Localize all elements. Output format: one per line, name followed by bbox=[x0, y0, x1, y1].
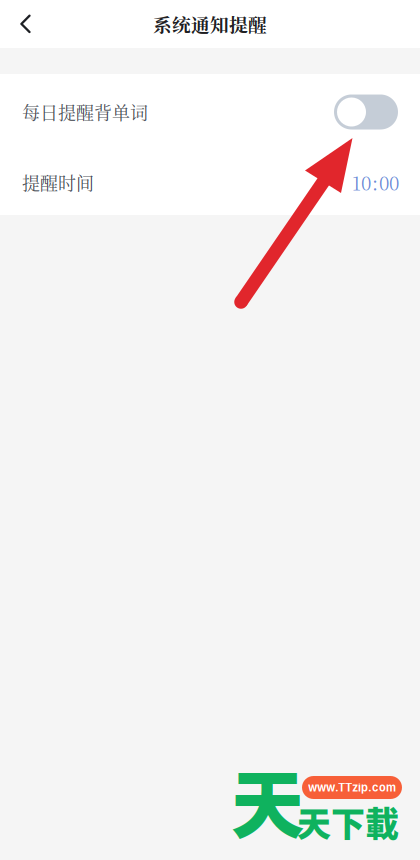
staticText: 系统通知提醒 bbox=[153, 11, 267, 37]
staticText: 提醒时间 bbox=[22, 170, 94, 195]
staticText: 每日提醒背单词 bbox=[22, 99, 148, 125]
button[interactable]: 每日提醒背单词 bbox=[0, 74, 420, 144]
button[interactable]: 提醒时间 bbox=[0, 144, 420, 215]
button[interactable]: Back bbox=[0, 0, 48, 48]
staticText: 天 bbox=[231, 747, 304, 853]
staticText: 天下載 bbox=[297, 797, 399, 846]
staticText: www.TTzip.com bbox=[308, 781, 396, 794]
staticText: 10 : 00 bbox=[352, 169, 399, 196]
